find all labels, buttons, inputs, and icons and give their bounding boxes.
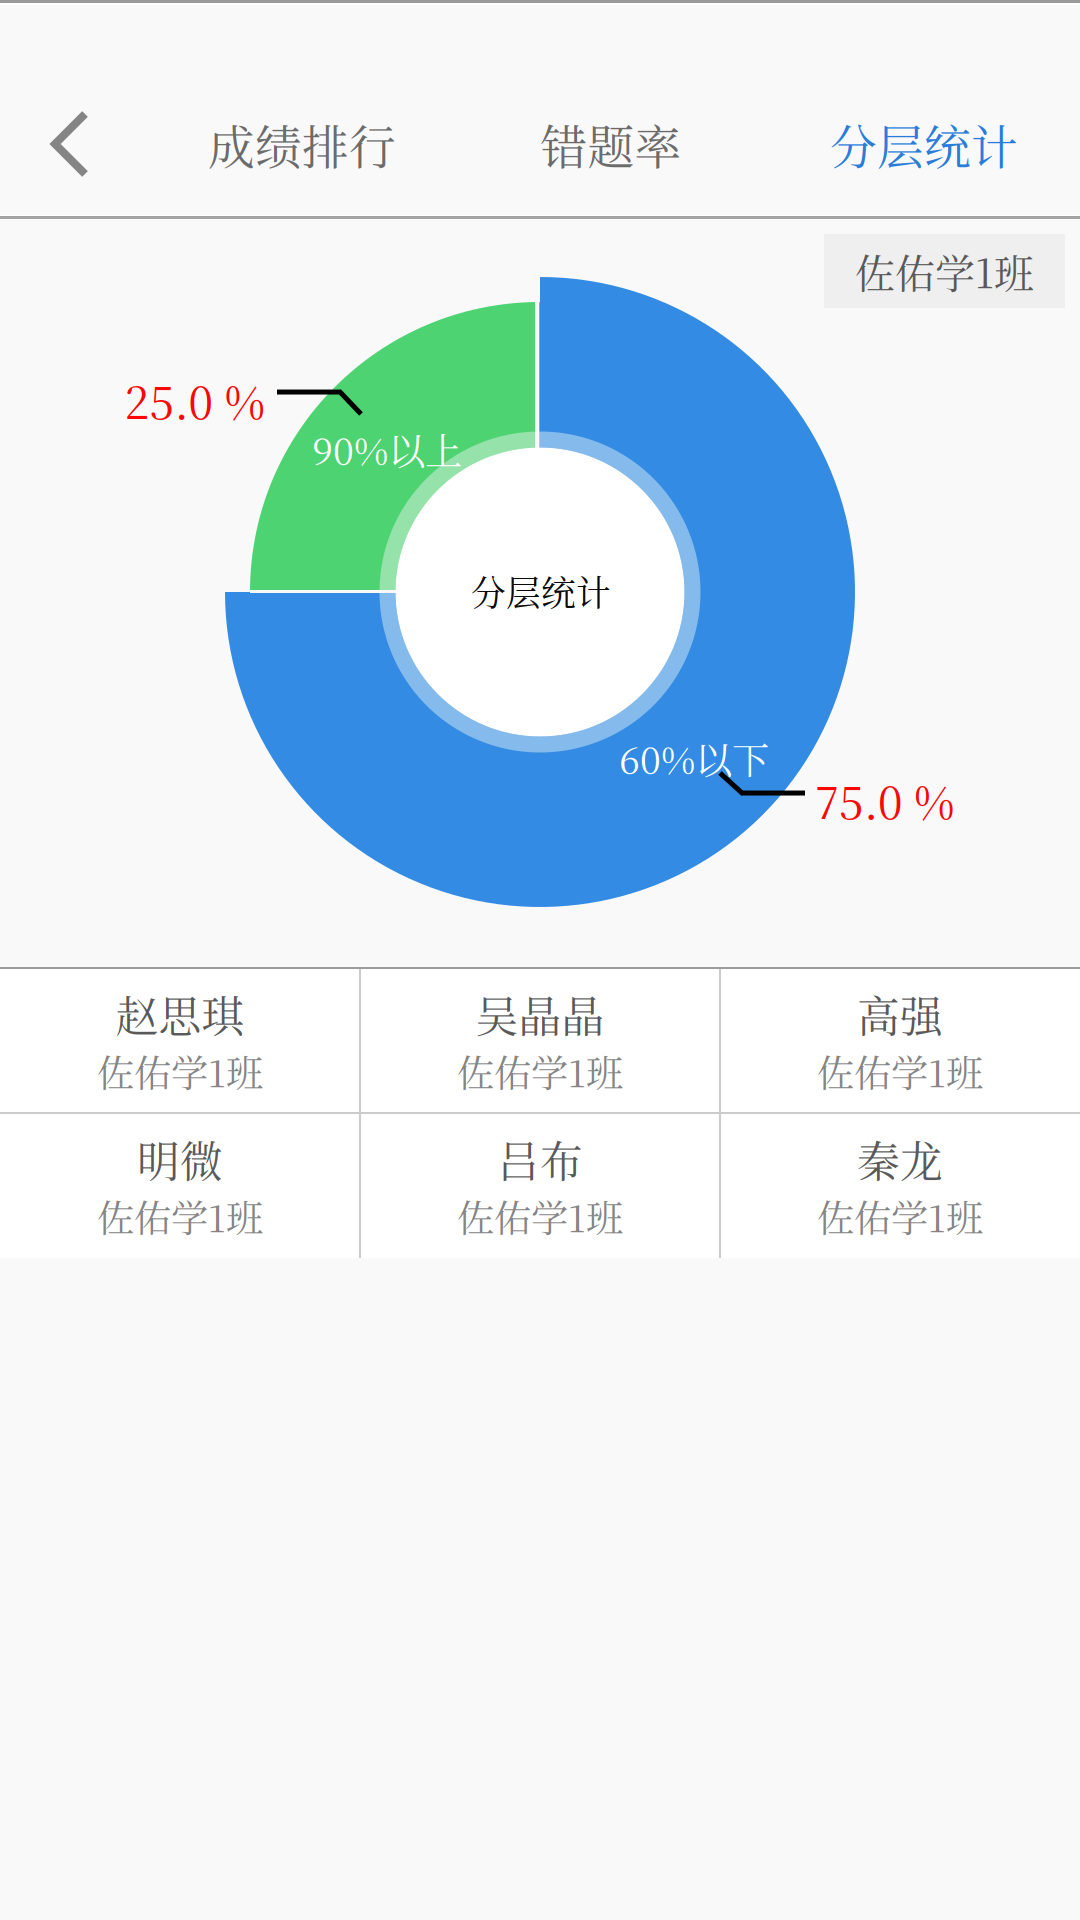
button[interactable]: 吴晶晶 — [360, 969, 720, 1113]
staticText: 成绩排行 — [208, 110, 396, 178]
staticText: 25.0 % — [124, 368, 265, 432]
staticText: 佐佑学1班 — [817, 1044, 983, 1098]
staticText: 错题率 — [540, 110, 681, 178]
button[interactable]: 明微 — [0, 1114, 360, 1258]
staticText: 明微 — [137, 1128, 223, 1190]
staticText: 60%以下 — [619, 731, 769, 785]
staticText: 佐佑学1班 — [97, 1044, 263, 1098]
staticText: 佐佑学1班 — [457, 1189, 623, 1243]
staticText: 分层统计 — [471, 566, 611, 616]
staticText: 吕布 — [497, 1128, 583, 1190]
staticText: 吴晶晶 — [475, 983, 604, 1045]
staticText: 分层统计 — [830, 110, 1018, 178]
button[interactable]: 错题率 — [481, 89, 741, 199]
staticText: 佐佑学1班 — [457, 1044, 623, 1098]
staticText: 佐佑学1班 — [97, 1189, 263, 1243]
button[interactable]: 分层统计 — [774, 89, 1074, 199]
staticText: 佐佑学1班 — [817, 1189, 983, 1243]
staticText: 75.0 % — [815, 768, 955, 832]
button[interactable]: Back — [0, 89, 140, 199]
button[interactable]: 秦龙 — [720, 1114, 1080, 1258]
button[interactable]: 成绩排行 — [152, 89, 452, 199]
button[interactable]: 吕布 — [360, 1114, 720, 1258]
button[interactable]: 高强 — [720, 969, 1080, 1113]
staticText: 90%以上 — [312, 422, 462, 476]
staticText: 佐佑学1班 — [855, 242, 1034, 300]
staticText: 赵思琪 — [115, 983, 244, 1045]
button[interactable]: 赵思琪 — [0, 969, 360, 1113]
staticText: 高强 — [857, 983, 943, 1045]
staticText: 秦龙 — [857, 1128, 943, 1190]
